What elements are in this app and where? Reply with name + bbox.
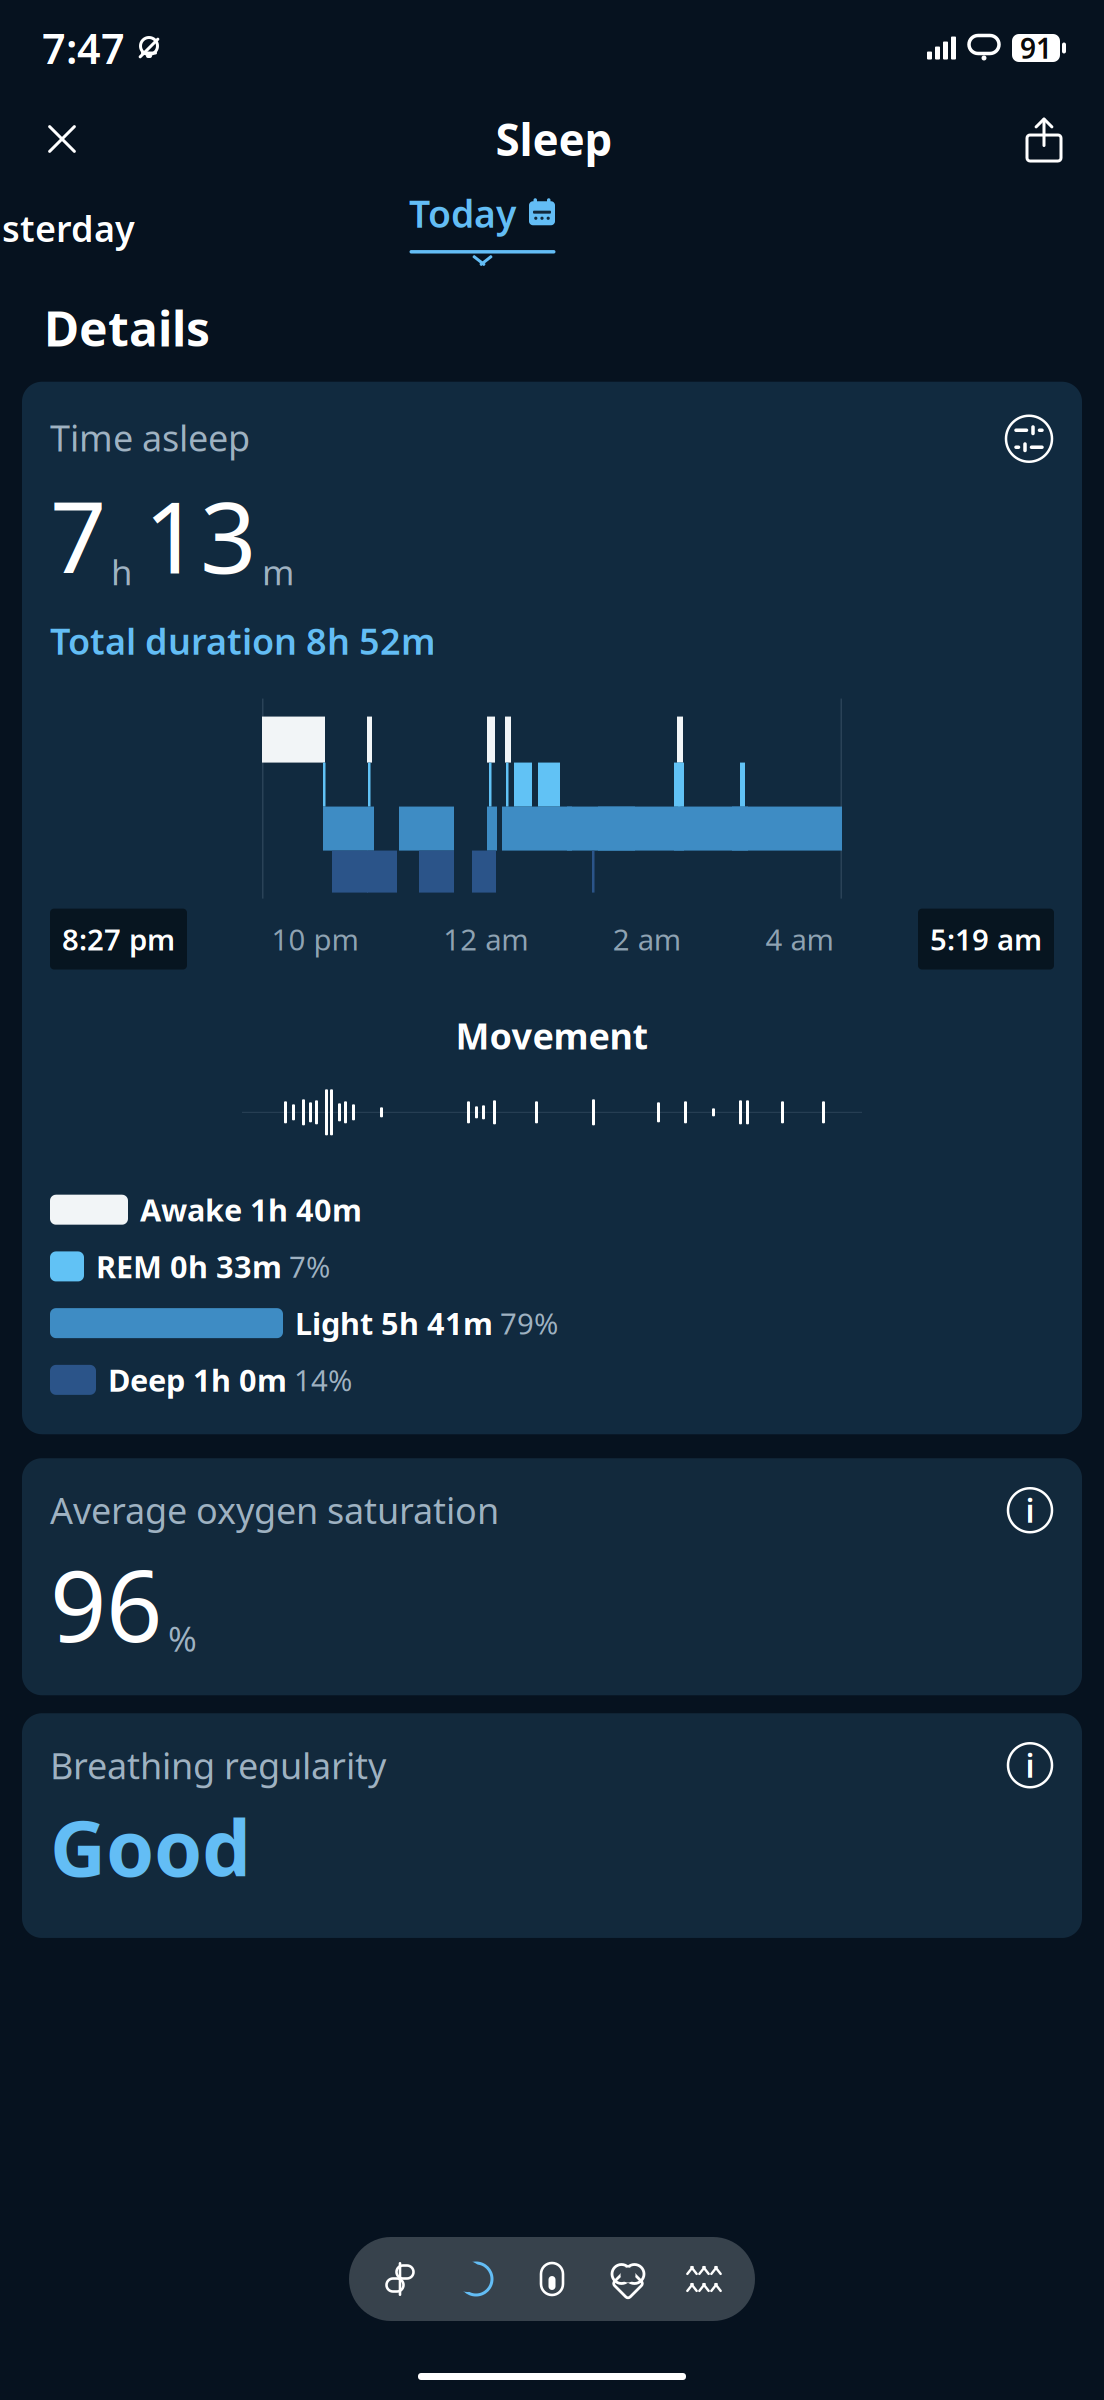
staticText: i xyxy=(1025,1744,1034,1786)
button[interactable]: Breathing xyxy=(679,2259,729,2299)
staticText: Time asleep xyxy=(50,414,250,461)
button[interactable]: Activity xyxy=(375,2259,425,2299)
staticText: Details xyxy=(44,296,210,360)
button[interactable]: About oxygen saturation xyxy=(1006,1486,1054,1534)
staticText: 4 am xyxy=(765,920,833,959)
staticText: sterday xyxy=(2,204,135,252)
staticText: 2 am xyxy=(613,920,681,959)
staticText: 96 xyxy=(50,1538,162,1669)
staticText: Sleep xyxy=(495,110,612,168)
staticText: 5:19 am xyxy=(930,920,1042,959)
staticText: i xyxy=(1025,1489,1034,1531)
button[interactable]: Heart xyxy=(603,2259,653,2299)
button[interactable]: Sleep xyxy=(451,2259,501,2299)
staticText: Average oxygen saturation xyxy=(50,1486,499,1534)
staticText: 13 xyxy=(144,470,256,601)
staticText: h xyxy=(111,549,132,595)
staticText: 8:27 pm xyxy=(62,920,175,959)
button[interactable]: sterday xyxy=(2,194,135,262)
staticText: 7% xyxy=(289,1247,330,1286)
staticText: 12 am xyxy=(443,920,528,959)
button[interactable]: Share xyxy=(1010,110,1078,168)
button[interactable]: Energy xyxy=(527,2259,577,2299)
button[interactable]: Chart settings xyxy=(1004,414,1054,464)
button[interactable]: About breathing regularity xyxy=(1006,1741,1054,1789)
staticText: Breathing regularity xyxy=(50,1741,386,1789)
staticText: 7 xyxy=(50,470,106,601)
staticText: % xyxy=(168,1615,197,1661)
button[interactable]: Today xyxy=(409,188,556,268)
staticText: Today xyxy=(409,188,516,238)
staticText: 7:47 xyxy=(42,21,125,75)
staticText: Awake 1h 40m xyxy=(140,1189,362,1230)
staticText: Total duration 8h 52m xyxy=(50,617,436,665)
staticText: 10 pm xyxy=(272,920,359,959)
staticText: REM 0h 33m xyxy=(96,1246,282,1287)
staticText: 91 xyxy=(1020,29,1052,67)
staticText: 79% xyxy=(500,1304,558,1343)
staticText: Deep 1h 0m xyxy=(108,1359,287,1400)
staticText: 14% xyxy=(294,1360,352,1399)
staticText: Light 5h 41m xyxy=(295,1303,493,1343)
staticText: m xyxy=(262,549,294,595)
staticText: Movement xyxy=(455,1011,648,1059)
button[interactable]: Close xyxy=(26,107,98,171)
staticText: Good xyxy=(50,1795,251,1898)
